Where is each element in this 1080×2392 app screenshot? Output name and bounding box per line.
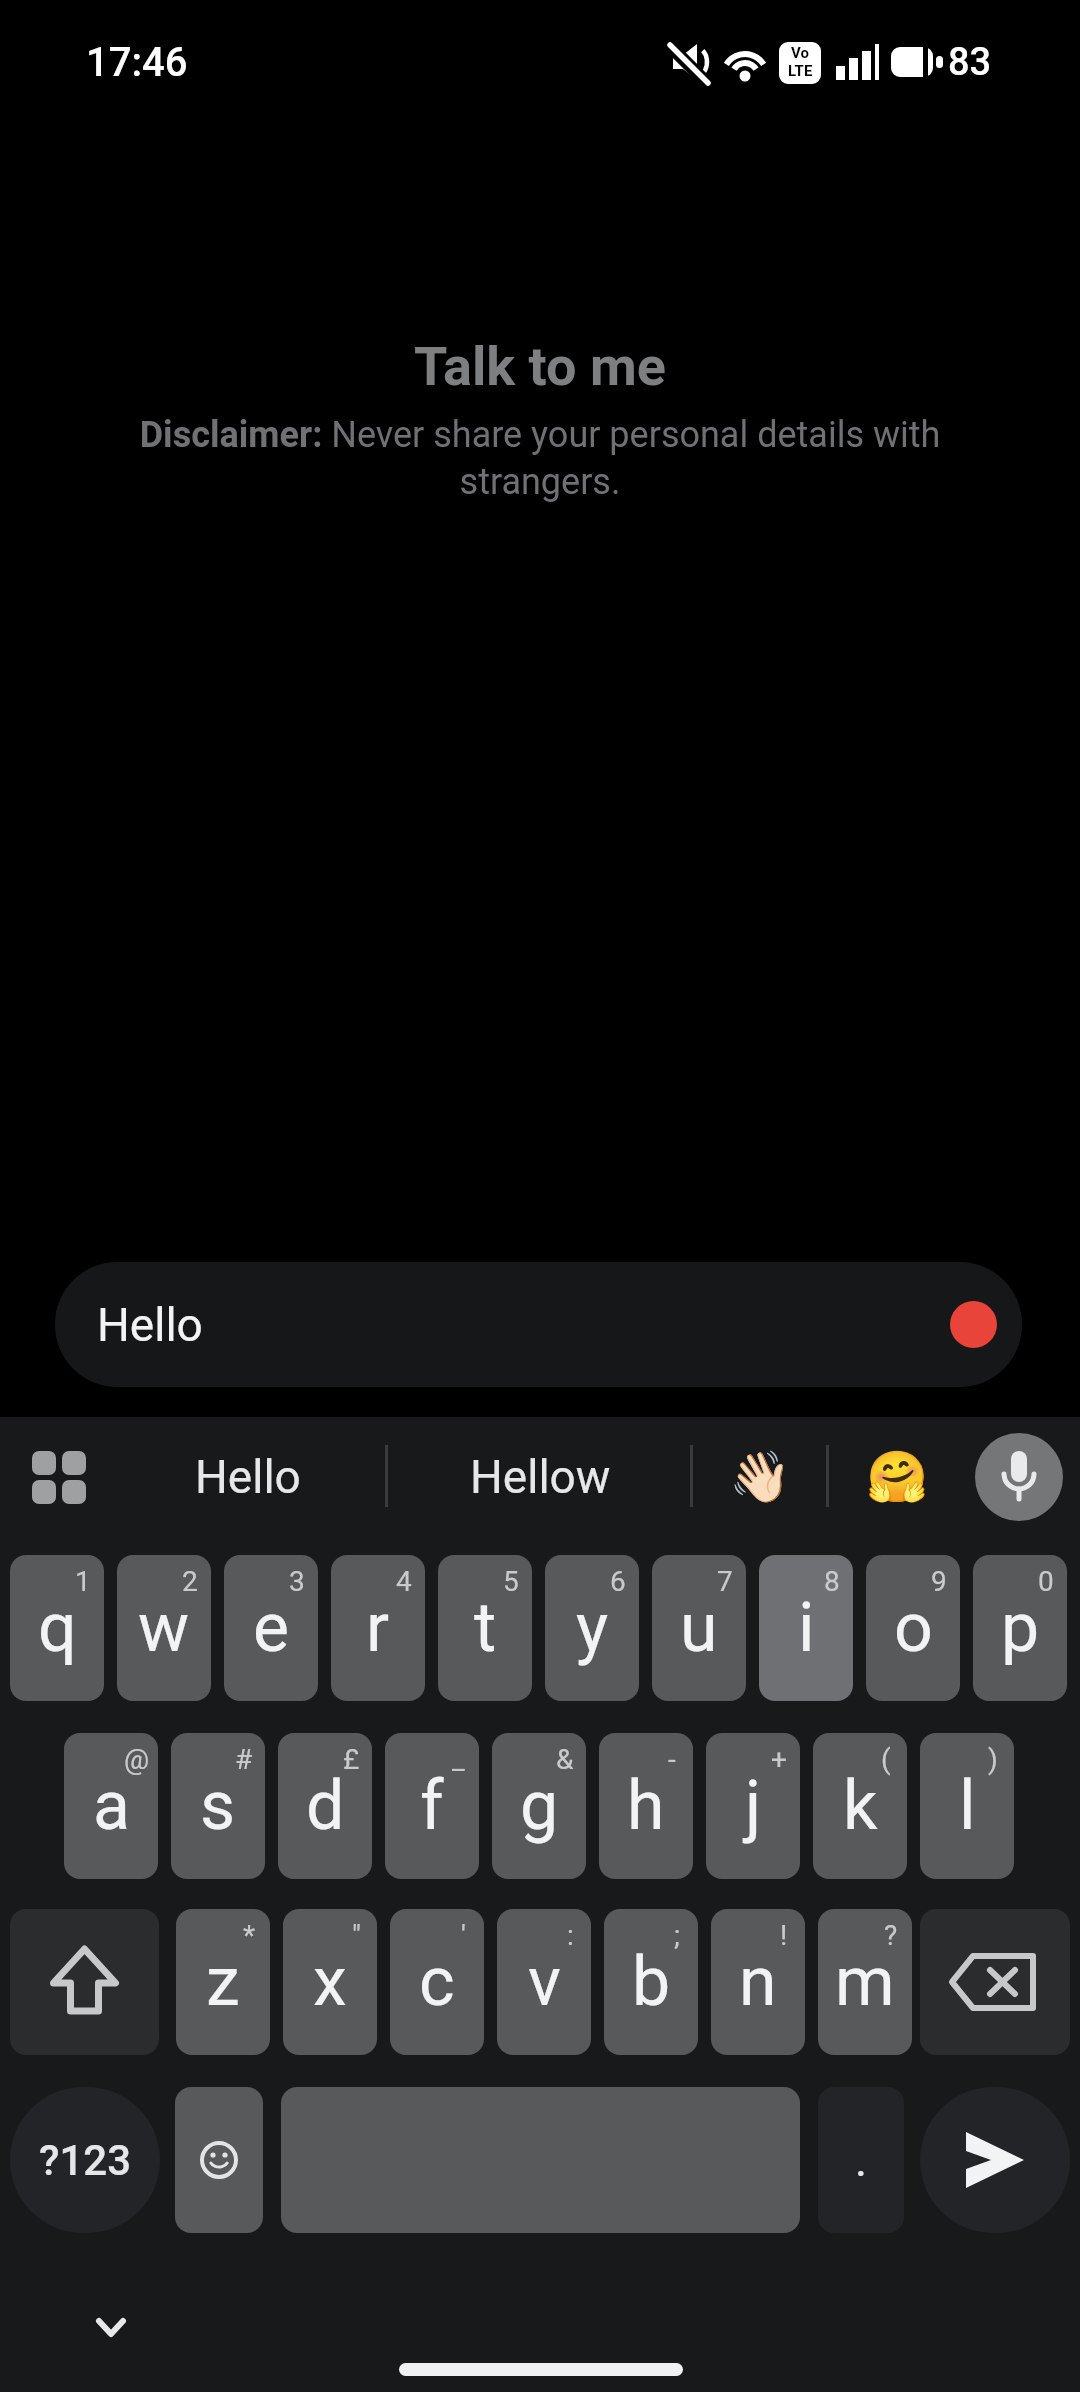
staticText: 🤗 xyxy=(866,1448,929,1507)
staticText: x xyxy=(313,1942,347,2022)
button[interactable]: s xyxy=(171,1733,265,1879)
staticText: k xyxy=(843,1766,878,1846)
staticText: e xyxy=(253,1588,290,1668)
button[interactable]: l xyxy=(920,1733,1014,1879)
staticText: 5 xyxy=(503,1565,519,1598)
button[interactable]: c xyxy=(390,1909,484,2055)
staticText: - xyxy=(668,1743,676,1776)
staticText: p xyxy=(1001,1588,1040,1668)
button[interactable] xyxy=(425,1431,655,1523)
staticText: Hellow xyxy=(470,1450,611,1504)
button[interactable]: n xyxy=(711,1909,805,2055)
button[interactable] xyxy=(281,2087,800,2233)
staticText: f xyxy=(420,1766,444,1846)
button[interactable] xyxy=(975,1433,1063,1521)
button[interactable] xyxy=(920,1909,1070,2055)
staticText: t xyxy=(474,1588,497,1668)
button[interactable]: f xyxy=(385,1733,479,1879)
staticText: ' xyxy=(461,1919,466,1952)
staticText: : xyxy=(567,1919,574,1952)
button[interactable]: i xyxy=(759,1555,853,1701)
staticText: z xyxy=(206,1942,240,2022)
button[interactable]: Hello xyxy=(55,1262,1022,1387)
button[interactable]: x xyxy=(283,1909,377,2055)
staticText: 9 xyxy=(931,1565,947,1598)
button[interactable] xyxy=(716,1431,806,1523)
staticText: r xyxy=(366,1588,390,1668)
button[interactable]: q xyxy=(10,1555,104,1701)
button[interactable]: r xyxy=(331,1555,425,1701)
button[interactable]: u xyxy=(652,1555,746,1701)
staticText: m xyxy=(835,1942,895,2022)
staticText: * xyxy=(243,1919,256,1952)
staticText: LTE xyxy=(788,62,813,80)
button[interactable]: j xyxy=(706,1733,800,1879)
staticText: Disclaimer: Never share your personal de… xyxy=(90,414,990,503)
staticText: q xyxy=(38,1588,77,1668)
button[interactable] xyxy=(175,2087,263,2233)
staticText: 1 xyxy=(75,1565,91,1598)
button[interactable]: o xyxy=(866,1555,960,1701)
button[interactable] xyxy=(852,1431,942,1523)
staticText: . xyxy=(855,2133,868,2187)
button[interactable]: a xyxy=(64,1733,158,1879)
staticText: + xyxy=(771,1743,787,1776)
staticText: o xyxy=(894,1588,933,1668)
button[interactable] xyxy=(920,2087,1070,2233)
staticText: 3 xyxy=(289,1565,305,1598)
staticText: 6 xyxy=(610,1565,626,1598)
staticText: ( xyxy=(881,1743,891,1776)
staticText: # xyxy=(235,1743,253,1776)
button[interactable]: p xyxy=(973,1555,1067,1701)
staticText: ! xyxy=(780,1919,788,1952)
button[interactable]: k xyxy=(813,1733,907,1879)
staticText: 17:46 xyxy=(86,39,188,86)
staticText: 4 xyxy=(396,1565,412,1598)
staticText: 👋🏻 xyxy=(729,1448,792,1507)
button[interactable]: z xyxy=(176,1909,270,2055)
button[interactable] xyxy=(950,1301,997,1348)
staticText: ) xyxy=(988,1743,998,1776)
staticText: l xyxy=(959,1766,976,1846)
button[interactable] xyxy=(140,1431,355,1523)
staticText: Hello xyxy=(97,1298,203,1352)
button[interactable]: w xyxy=(117,1555,211,1701)
button[interactable]: m xyxy=(818,1909,912,2055)
staticText: & xyxy=(556,1743,574,1776)
staticText: v xyxy=(528,1942,561,2022)
staticText: y xyxy=(576,1588,609,1668)
staticText: ; xyxy=(674,1919,680,1952)
staticText: h xyxy=(627,1766,665,1846)
staticText: " xyxy=(352,1919,361,1952)
button[interactable]: e xyxy=(224,1555,318,1701)
button[interactable]: b xyxy=(604,1909,698,2055)
staticText: £ xyxy=(343,1743,360,1776)
staticText: Hello xyxy=(195,1450,301,1504)
button[interactable]: ?123 xyxy=(10,2087,160,2233)
button[interactable]: y xyxy=(545,1555,639,1701)
staticText: s xyxy=(200,1766,236,1846)
button[interactable] xyxy=(86,2307,138,2349)
button[interactable]: v xyxy=(497,1909,591,2055)
staticText: w xyxy=(138,1588,190,1668)
staticText: d xyxy=(306,1766,345,1846)
staticText: ?123 xyxy=(39,2136,132,2185)
button[interactable]: h xyxy=(599,1733,693,1879)
staticText: 83 xyxy=(948,40,992,85)
staticText: g xyxy=(520,1766,559,1846)
staticText: Vo xyxy=(791,44,809,62)
button[interactable]: g xyxy=(492,1733,586,1879)
button[interactable]: d xyxy=(278,1733,372,1879)
staticText: b xyxy=(632,1942,671,2022)
staticText: _ xyxy=(452,1743,465,1776)
staticText: i xyxy=(798,1588,815,1668)
staticText: 0 xyxy=(1038,1565,1054,1598)
staticText: ? xyxy=(884,1919,898,1952)
staticText: @ xyxy=(124,1743,150,1776)
staticText: c xyxy=(419,1942,455,2022)
button[interactable]: . xyxy=(818,2087,904,2233)
button[interactable]: t xyxy=(438,1555,532,1701)
button[interactable] xyxy=(10,1909,159,2055)
staticText: j xyxy=(745,1766,762,1846)
staticText: 8 xyxy=(824,1565,840,1598)
